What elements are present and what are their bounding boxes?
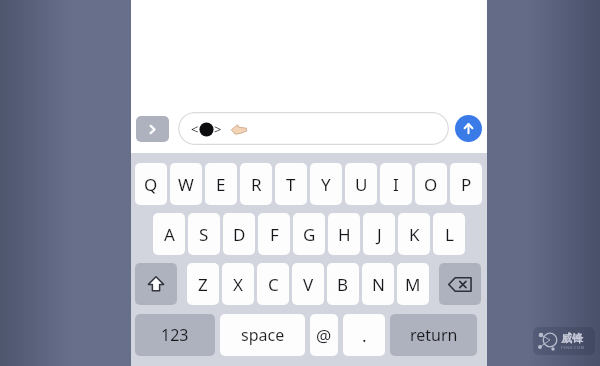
button[interactable]: Shift (135, 263, 177, 305)
staticText: E (216, 173, 226, 196)
staticText: F (270, 223, 279, 246)
staticText: D (233, 223, 246, 246)
button[interactable]: P (450, 163, 482, 205)
button[interactable]: More apps (136, 116, 169, 142)
staticText: W (178, 173, 194, 196)
staticText: R (251, 173, 262, 196)
button[interactable]: X (222, 263, 254, 305)
staticText: K (409, 223, 420, 246)
button[interactable]: U (345, 163, 377, 205)
staticText: return (410, 324, 458, 346)
button[interactable]: H (328, 213, 360, 255)
button[interactable]: L (433, 213, 465, 255)
staticText: N (372, 273, 385, 296)
staticText: Z (198, 273, 208, 296)
button[interactable]: K (398, 213, 430, 255)
staticText: FENG.COM (561, 345, 585, 350)
button[interactable]: T (275, 163, 307, 205)
staticText: P (461, 173, 472, 196)
button[interactable]: Backspace (439, 263, 481, 305)
staticText: O (424, 173, 438, 196)
button[interactable]: space (220, 314, 305, 356)
button[interactable]: I (380, 163, 412, 205)
staticText: X (233, 273, 243, 296)
button[interactable]: 123 (135, 314, 215, 356)
staticText: I (393, 173, 399, 196)
staticText: A (164, 223, 175, 246)
button[interactable]: W (170, 163, 202, 205)
staticText: B (337, 273, 349, 296)
button[interactable]: Y (310, 163, 342, 205)
staticText: space (241, 324, 285, 346)
staticText: J (377, 223, 382, 246)
button[interactable]: S (188, 213, 220, 255)
staticText: 123 (161, 324, 189, 346)
staticText: @ (316, 324, 332, 347)
button[interactable]: Send (455, 115, 482, 142)
button[interactable]: Z (187, 263, 219, 305)
staticText: 威锋 (561, 331, 583, 345)
button[interactable]: @ (310, 314, 338, 356)
staticText: G (303, 223, 316, 246)
staticText: < (191, 120, 199, 138)
staticText: T (286, 173, 296, 196)
button[interactable]: D (223, 213, 255, 255)
button[interactable]: C (257, 263, 289, 305)
button[interactable]: O (415, 163, 447, 205)
button[interactable]: N (362, 263, 394, 305)
button[interactable]: M (397, 263, 429, 305)
staticText: Y (321, 173, 331, 196)
button[interactable]: R (240, 163, 272, 205)
staticText: M (405, 273, 421, 296)
button[interactable]: return (390, 314, 477, 356)
staticText: H (338, 223, 351, 246)
button[interactable]: E (205, 163, 237, 205)
button[interactable]: < (178, 112, 449, 145)
staticText: V (303, 273, 314, 296)
button[interactable]: B (327, 263, 359, 305)
button[interactable]: J (363, 213, 395, 255)
button[interactable]: Q (135, 163, 167, 205)
staticText: . (362, 324, 367, 347)
staticText: Q (144, 173, 158, 196)
button[interactable]: V (292, 263, 324, 305)
button[interactable]: G (293, 213, 325, 255)
staticText: L (445, 223, 454, 246)
staticText: S (199, 223, 209, 246)
staticText: C (268, 273, 279, 296)
staticText: > (214, 120, 222, 138)
button[interactable]: A (153, 213, 185, 255)
button[interactable]: . (343, 314, 385, 356)
staticText: U (355, 173, 368, 196)
button[interactable]: F (258, 213, 290, 255)
